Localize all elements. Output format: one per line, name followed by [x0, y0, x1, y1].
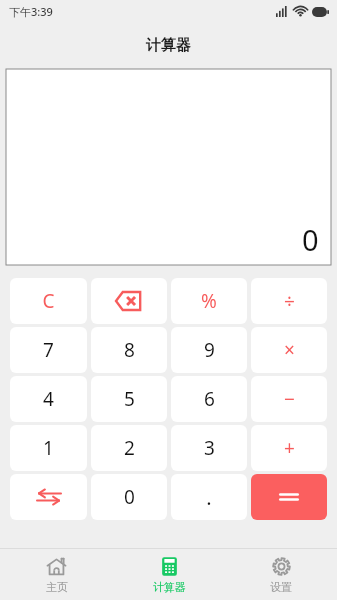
staticText: ÷ [284, 288, 295, 314]
button[interactable]: × [251, 327, 327, 373]
button[interactable]: 6 [171, 376, 247, 422]
button[interactable]: Equals [251, 474, 327, 520]
button[interactable]: 7 [10, 327, 87, 373]
button[interactable]: % [171, 278, 247, 324]
staticText: 0 [302, 220, 319, 259]
staticText: . [206, 484, 212, 511]
button[interactable]: + [251, 425, 327, 471]
staticText: + [284, 435, 295, 461]
staticText: 5 [124, 386, 135, 412]
button[interactable]: 1 [10, 425, 87, 471]
button[interactable]: 设置 [225, 549, 337, 600]
button[interactable]: ÷ [251, 278, 327, 324]
staticText: 0 [124, 484, 135, 510]
button[interactable]: Backspace [91, 278, 167, 324]
staticText: 计算器 [146, 36, 191, 55]
staticText: 6 [204, 386, 215, 412]
staticText: − [284, 386, 295, 412]
staticText: 计算器 [153, 580, 186, 594]
staticText: 2 [124, 435, 135, 461]
staticText: 主页 [46, 580, 68, 594]
button[interactable]: . [171, 474, 247, 520]
button[interactable]: 2 [91, 425, 167, 471]
staticText: 7 [43, 337, 54, 363]
staticText: 下午3:39 [9, 4, 53, 19]
button[interactable]: 主页 [0, 549, 113, 600]
button[interactable]: 0 [91, 474, 167, 520]
button[interactable]: 4 [10, 376, 87, 422]
button[interactable]: 9 [171, 327, 247, 373]
button[interactable]: Swap [10, 474, 87, 520]
button[interactable]: 计算器 [113, 549, 225, 600]
staticText: 设置 [270, 580, 292, 594]
button[interactable]: − [251, 376, 327, 422]
staticText: % [201, 288, 217, 314]
staticText: 1 [43, 435, 54, 461]
staticText: C [42, 288, 55, 314]
button[interactable]: 5 [91, 376, 167, 422]
button[interactable]: 8 [91, 327, 167, 373]
staticText: × [284, 337, 295, 363]
staticText: 8 [124, 337, 135, 363]
button[interactable]: 3 [171, 425, 247, 471]
staticText: 4 [43, 386, 54, 412]
button[interactable]: C [10, 278, 87, 324]
staticText: 9 [204, 337, 215, 363]
staticText: 3 [204, 435, 215, 461]
